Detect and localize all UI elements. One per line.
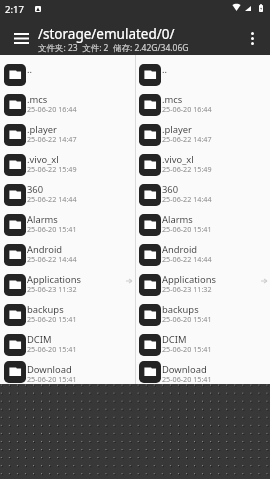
- button[interactable]: More options: [240, 19, 264, 55]
- staticText: 25-06-20 16:44: [27, 104, 77, 114]
- staticText: 25-06-22 15:49: [162, 164, 212, 174]
- button[interactable]: Android: [0, 240, 135, 270]
- button[interactable]: Alarms: [0, 210, 135, 240]
- staticText: 25-06-20 15:41: [27, 344, 77, 354]
- staticText: 360: [27, 183, 44, 196]
- staticText: 25-06-22 14:44: [27, 254, 77, 264]
- staticText: 25-06-22 14:44: [162, 254, 212, 264]
- staticText: .player: [162, 123, 192, 136]
- staticText: 25-06-20 15:41: [162, 314, 212, 324]
- button[interactable]: backups: [0, 300, 135, 330]
- staticText: Download: [162, 363, 207, 376]
- staticText: DCIM: [162, 333, 187, 346]
- staticText: ..: [27, 63, 33, 76]
- staticText: Download: [27, 363, 72, 376]
- button[interactable]: .player: [135, 120, 270, 150]
- staticText: .mcs: [27, 93, 48, 106]
- staticText: 25-06-23 11:32: [162, 284, 212, 294]
- button[interactable]: Alarms: [135, 210, 270, 240]
- staticText: 25-06-20 15:41: [162, 224, 212, 234]
- button[interactable]: .vivo_xl: [135, 150, 270, 180]
- staticText: 25-06-22 15:49: [27, 164, 77, 174]
- staticText: 25-06-20 15:41: [162, 374, 212, 384]
- staticText: 360: [162, 183, 179, 196]
- staticText: Android: [27, 243, 63, 256]
- staticText: 25-06-20 15:41: [162, 344, 212, 354]
- button[interactable]: ..: [0, 60, 135, 90]
- staticText: Android: [162, 243, 198, 256]
- staticText: DCIM: [27, 333, 52, 346]
- staticText: Applications: [162, 273, 216, 286]
- button[interactable]: Android: [135, 240, 270, 270]
- staticText: Applications: [27, 273, 81, 286]
- button[interactable]: 360: [0, 180, 135, 210]
- staticText: 25-06-22 14:44: [27, 194, 77, 204]
- staticText: ..: [162, 63, 168, 76]
- staticText: 25-06-20 15:41: [27, 224, 77, 234]
- button[interactable]: backups: [135, 300, 270, 330]
- button[interactable]: Menu: [3, 19, 39, 55]
- staticText: .vivo_xl: [162, 153, 194, 166]
- button[interactable]: .mcs: [0, 90, 135, 120]
- staticText: Alarms: [27, 213, 58, 226]
- staticText: backups: [27, 303, 64, 316]
- button[interactable]: Applications: [0, 270, 135, 300]
- button[interactable]: .mcs: [135, 90, 270, 120]
- button[interactable]: .player: [0, 120, 135, 150]
- staticText: backups: [162, 303, 199, 316]
- staticText: Alarms: [162, 213, 193, 226]
- button[interactable]: DCIM: [135, 330, 270, 360]
- staticText: .player: [27, 123, 57, 136]
- staticText: 25-06-22 14:47: [162, 134, 212, 144]
- button[interactable]: 360: [135, 180, 270, 210]
- staticText: 2:17: [5, 3, 25, 16]
- staticText: 25-06-23 11:32: [27, 284, 77, 294]
- staticText: 25-06-22 14:44: [162, 194, 212, 204]
- button[interactable]: Download: [135, 360, 270, 384]
- button[interactable]: Download: [0, 360, 135, 384]
- button[interactable]: DCIM: [0, 330, 135, 360]
- button[interactable]: Applications: [135, 270, 270, 300]
- button[interactable]: .vivo_xl: [0, 150, 135, 180]
- button[interactable]: ..: [135, 60, 270, 90]
- staticText: 25-06-20 15:41: [27, 374, 77, 384]
- staticText: 25-06-20 16:44: [162, 104, 212, 114]
- staticText: .vivo_xl: [27, 153, 59, 166]
- staticText: /storage/emulated/0/: [38, 25, 175, 43]
- staticText: 25-06-22 14:47: [27, 134, 77, 144]
- staticText: 文件夹: 23 文件: 2 储存: 2.42G/34.06G: [38, 42, 189, 54]
- staticText: 25-06-20 15:41: [27, 314, 77, 324]
- staticText: .mcs: [162, 93, 183, 106]
